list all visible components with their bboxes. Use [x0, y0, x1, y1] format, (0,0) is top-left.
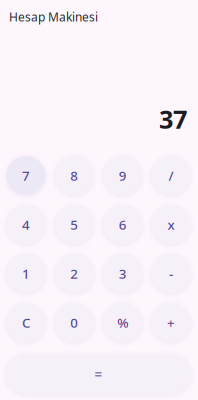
button[interactable]: 6	[103, 205, 142, 244]
staticText: 7	[22, 167, 30, 184]
button[interactable]: C	[6, 303, 45, 342]
staticText: -	[169, 265, 173, 282]
staticText: x	[167, 216, 174, 233]
button[interactable]: +	[151, 303, 190, 342]
button[interactable]: 8	[55, 156, 94, 195]
staticText: =	[94, 365, 102, 383]
staticText: 37	[159, 102, 187, 136]
button[interactable]: =	[6, 354, 191, 394]
button[interactable]: 7	[6, 156, 45, 195]
staticText: 4	[22, 216, 30, 233]
staticText: 6	[119, 216, 127, 233]
button[interactable]: 9	[103, 156, 142, 195]
staticText: Hesap Makinesi	[9, 9, 98, 25]
staticText: 1	[22, 265, 30, 282]
button[interactable]: 4	[6, 205, 45, 244]
button[interactable]: /	[151, 156, 190, 195]
button[interactable]: 3	[103, 254, 142, 293]
staticText: 0	[70, 314, 78, 331]
button[interactable]: -	[151, 254, 190, 293]
staticText: /	[168, 167, 173, 184]
staticText: 5	[70, 216, 78, 233]
button[interactable]: 0	[55, 303, 94, 342]
staticText: 2	[70, 265, 78, 282]
staticText: 8	[70, 167, 78, 184]
button[interactable]: 1	[6, 254, 45, 293]
staticText: %	[117, 314, 128, 331]
staticText: 9	[119, 167, 127, 184]
button[interactable]: 2	[55, 254, 94, 293]
button[interactable]: x	[151, 205, 190, 244]
staticText: C	[22, 314, 30, 331]
button[interactable]: 5	[55, 205, 94, 244]
button[interactable]: %	[103, 303, 142, 342]
staticText: +	[167, 314, 175, 331]
staticText: 3	[119, 265, 127, 282]
